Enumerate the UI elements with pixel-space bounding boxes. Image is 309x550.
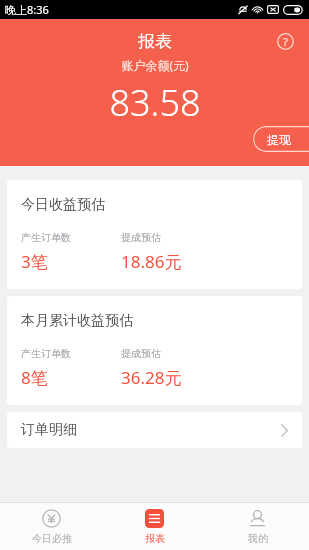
staticText: 8笔 — [21, 366, 48, 389]
staticText: 账户余额(元) — [121, 57, 189, 73]
button[interactable]: 订单明细 — [7, 412, 302, 448]
staticText: 报表 — [145, 532, 165, 545]
button[interactable]: 本月累计收益预估 — [7, 296, 302, 405]
button[interactable]: 我的 — [206, 503, 309, 550]
staticText: 产生订单数 — [21, 347, 71, 360]
button[interactable]: 今日收益预估 — [7, 180, 302, 289]
staticText: 3笔 — [21, 250, 48, 273]
staticText: 提现 — [267, 132, 291, 147]
button[interactable]: Help — [271, 27, 299, 55]
staticText: 晚上8:36 — [5, 2, 49, 17]
staticText: 83.58 — [109, 78, 201, 127]
staticText: 订单明细 — [21, 421, 77, 439]
button[interactable]: 报表 — [103, 503, 206, 550]
staticText: ? — [283, 34, 288, 49]
staticText: 本月累计收益预估 — [21, 312, 133, 330]
staticText: 今日必推 — [32, 532, 72, 545]
button[interactable]: 今日必推 — [0, 503, 103, 550]
staticText: 提成预估 — [121, 231, 161, 244]
staticText: 36.28元 — [121, 366, 182, 389]
staticText: 我的 — [248, 532, 268, 545]
staticText: 产生订单数 — [21, 231, 71, 244]
staticText: 提成预估 — [121, 347, 161, 360]
staticText: 18.86元 — [121, 250, 182, 273]
staticText: 今日收益预估 — [21, 196, 105, 214]
button[interactable]: 提现 — [253, 126, 309, 152]
staticText: 报表 — [138, 31, 172, 52]
